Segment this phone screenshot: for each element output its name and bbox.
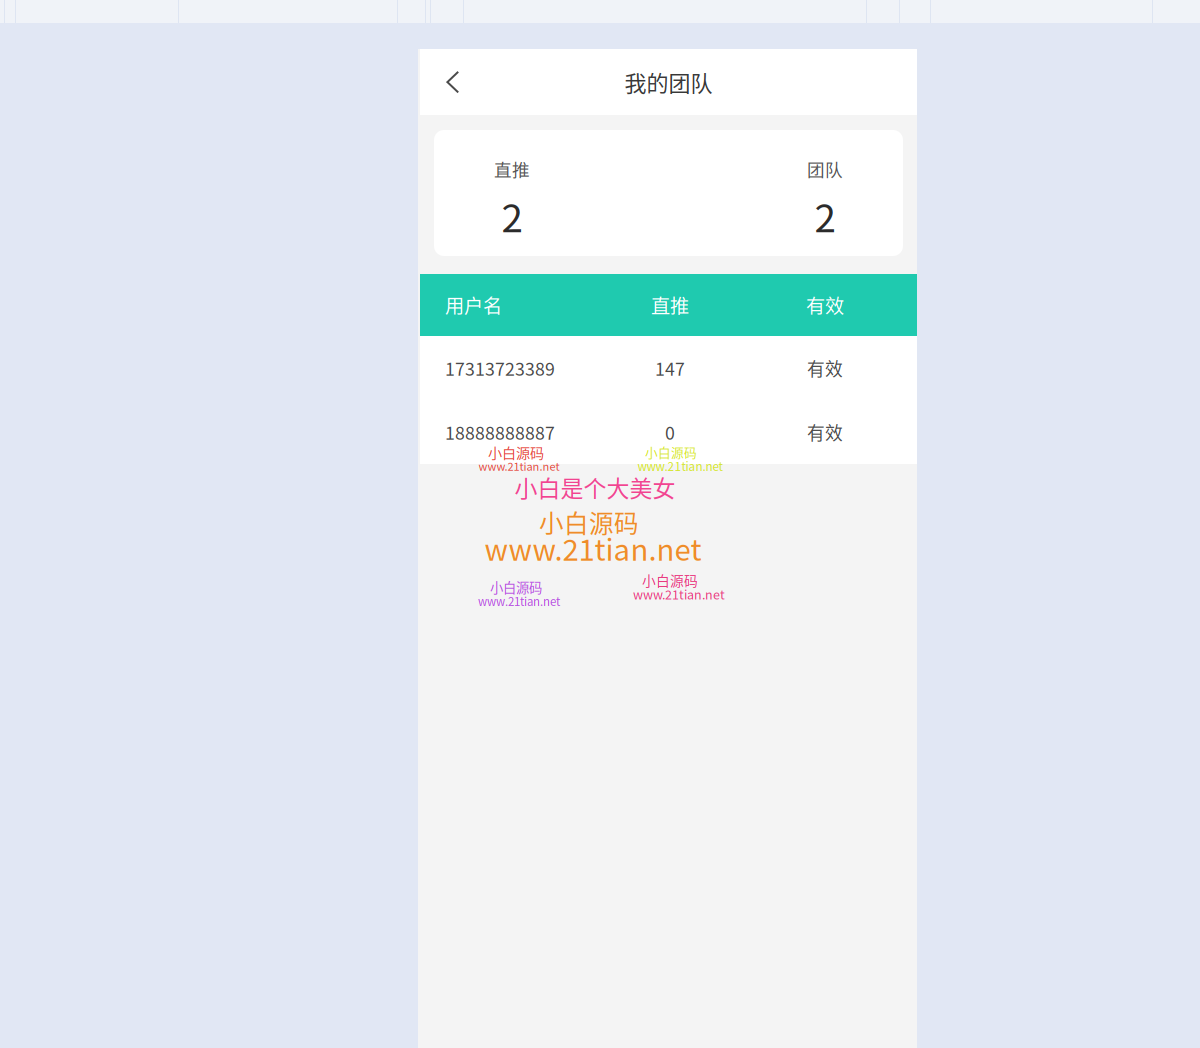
staticText: 团队 [807,156,843,181]
staticText: 小白源码 [642,570,698,590]
staticText: 小白源码 [490,577,542,597]
button[interactable]: Back [420,49,472,115]
staticText: 我的团队 [624,66,712,98]
staticText: 有效 [807,355,843,381]
staticText: 小白源码 [539,504,639,540]
staticText: 小白源码 [488,442,544,462]
staticText: www.21tian.net [484,527,701,569]
staticText: 用户名 [445,291,502,319]
staticText: 直推 [651,291,689,319]
staticText: 小白是个大美女 [514,470,675,504]
staticText: 有效 [807,419,843,445]
staticText: 18888888887 [445,419,555,445]
staticText: 有效 [806,291,844,319]
staticText: www.21tian.net [633,585,725,603]
button[interactable]: 18888888887 [420,400,917,464]
staticText: 147 [655,355,685,381]
staticText: 2 [814,187,835,243]
staticText: www.21tian.net [478,458,559,474]
staticText: 直推 [494,156,530,181]
staticText: 17313723389 [445,355,555,381]
staticText: 2 [501,187,522,243]
staticText: www.21tian.net [478,593,560,609]
staticText: 小白源码 [645,443,697,461]
button[interactable]: 17313723389 [420,336,917,400]
staticText: 0 [665,419,675,445]
staticText: www.21tian.net [637,457,722,474]
